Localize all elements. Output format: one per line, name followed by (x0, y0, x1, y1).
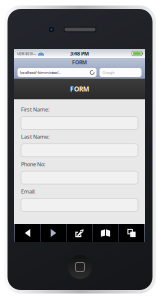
button[interactable]: Tabs (118, 224, 144, 242)
staticText: First Name: (21, 106, 49, 113)
staticText: 3:48 PM (70, 50, 89, 57)
staticText: FORM (70, 85, 89, 93)
button[interactable]: localhost/~kimmintae/... (17, 68, 96, 77)
button[interactable]: Forward (40, 224, 66, 242)
button[interactable]: Share (66, 224, 92, 242)
button[interactable]: Bookmarks (92, 224, 118, 242)
staticText: Google (102, 70, 114, 75)
button[interactable]: Google (99, 68, 141, 77)
staticText: 네트워크... (17, 51, 36, 56)
staticText: Email: (21, 188, 35, 195)
button[interactable]: Back (14, 224, 40, 242)
staticText: Phone No: (21, 161, 45, 168)
staticText: FORM (72, 59, 87, 66)
staticText: Last Name: (21, 133, 49, 140)
staticText: localhost/~kimmintae/... (20, 70, 61, 75)
